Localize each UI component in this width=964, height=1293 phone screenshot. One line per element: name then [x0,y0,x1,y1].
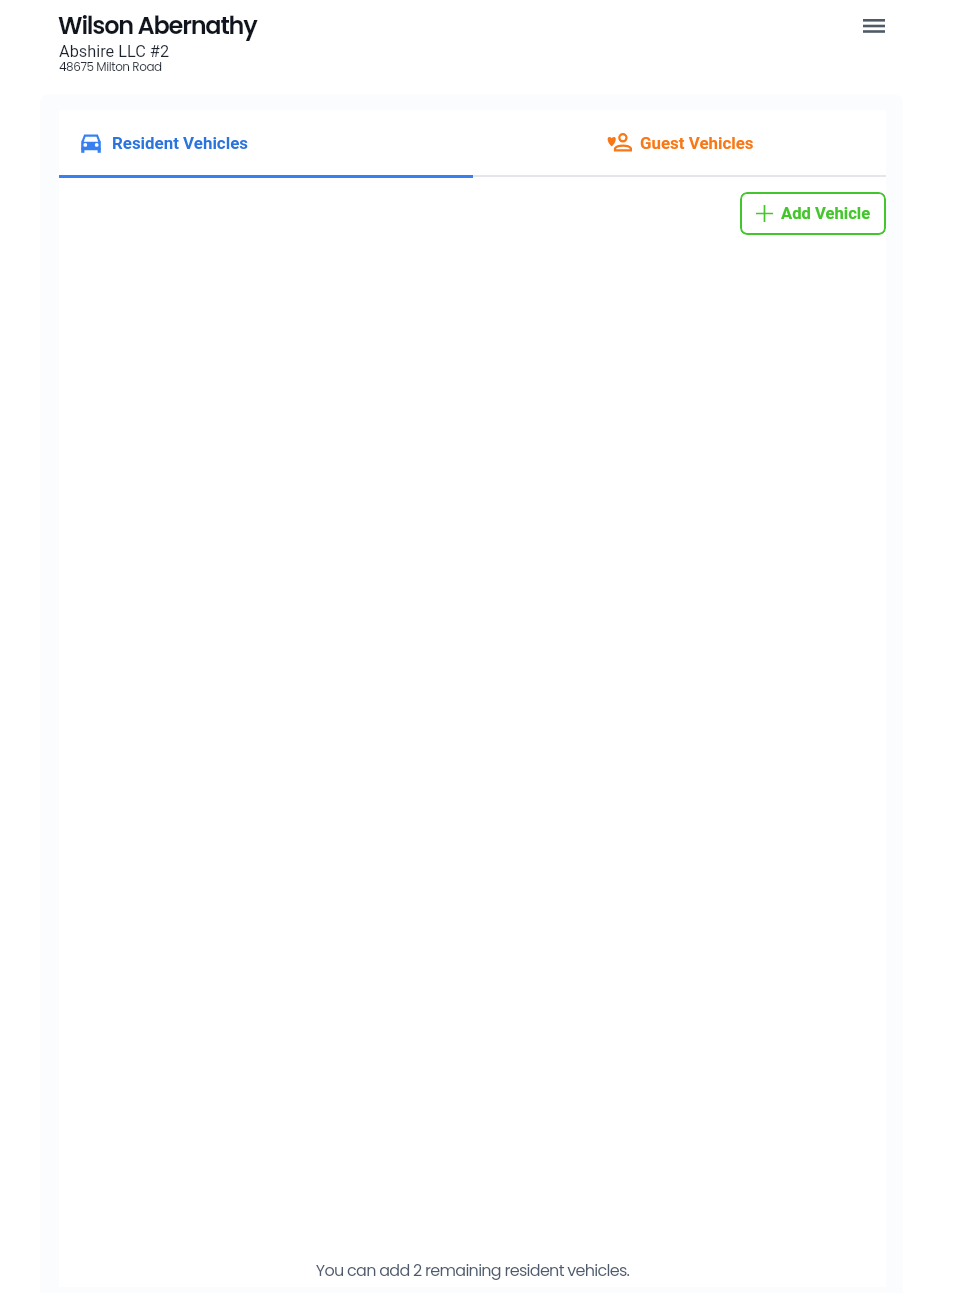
staticText: You can add 2 remaining resident vehicle… [59,1259,886,1281]
staticText: 48675 Milton Road [59,58,162,75]
staticText: Resident Vehicles [112,133,248,153]
button[interactable]: Resident Vehicles [59,110,472,176]
button[interactable]: Add Vehicle [740,192,886,235]
button[interactable]: Menu [853,10,895,42]
staticText: Guest Vehicles [640,133,754,153]
button[interactable]: Guest Vehicles [472,110,886,176]
staticText: Add Vehicle [781,204,871,223]
staticText: Abshire LLC #2 [59,42,170,61]
staticText: Wilson Abernathy [58,9,257,43]
